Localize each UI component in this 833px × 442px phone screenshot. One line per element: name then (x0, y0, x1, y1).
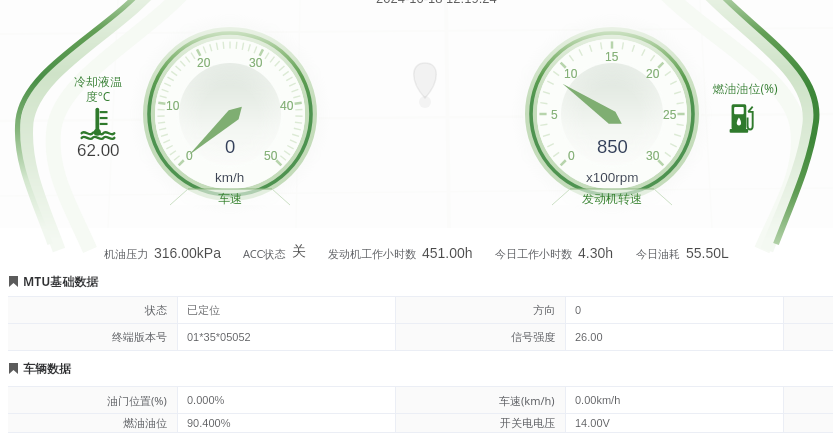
staticText: 机油压力 (104, 247, 148, 261)
button[interactable]: 状态 (8, 297, 177, 323)
staticText: 0 (575, 304, 582, 316)
button[interactable]: 0.00km/h (566, 387, 783, 413)
staticText: 25 (663, 108, 677, 121)
button[interactable]: 14.00V (566, 414, 783, 432)
staticText: 冷却液温 度°C (74, 74, 122, 104)
button[interactable]: MTU基础数据 (9, 273, 99, 289)
staticText: 已定位 (187, 303, 220, 317)
button[interactable]: ACC状态 (243, 243, 306, 261)
staticText: 发动机工作小时数 (328, 247, 416, 261)
button[interactable]: 开关电电压 (396, 414, 565, 432)
staticText: 20 (646, 67, 660, 80)
other: Coolant temperature (81, 107, 115, 139)
staticText: 55.50L (686, 245, 729, 261)
button[interactable]: 油门位置(%) (8, 387, 177, 413)
staticText: 14.00V (575, 417, 610, 429)
staticText: 30 (249, 56, 263, 69)
staticText: 燃油油位(%) (712, 80, 778, 96)
button[interactable]: 0.000% (178, 387, 395, 413)
button[interactable]: 机油压力 (104, 245, 221, 261)
button[interactable]: 发动机工作小时数 (328, 245, 473, 261)
button[interactable]: 01*35*05052 (178, 324, 395, 350)
staticText: 车速(km/h) (499, 393, 555, 408)
staticText: ACC状态 (243, 246, 286, 261)
staticText: 40 (280, 99, 294, 112)
staticText: 01*35*05052 (187, 331, 251, 343)
button[interactable]: 今日工作小时数 (495, 245, 614, 261)
staticText: 50 (264, 149, 278, 162)
staticText: 15 (605, 50, 619, 63)
button[interactable]: 燃油油位(%) (705, 80, 785, 134)
staticText: 车速 (218, 191, 242, 206)
button[interactable]: 已定位 (178, 297, 395, 323)
staticText: 10 (564, 67, 578, 80)
staticText: 4.30h (578, 245, 614, 261)
staticText: 5 (551, 108, 558, 121)
staticText: 车辆数据 (23, 361, 71, 376)
staticText: 油门位置(%) (107, 393, 167, 408)
staticText: 0.00km/h (575, 394, 621, 406)
button[interactable]: 今日油耗 (636, 245, 729, 261)
staticText: 10 (166, 99, 180, 112)
staticText: 关 (292, 243, 306, 261)
staticText: MTU基础数据 (23, 273, 99, 289)
button[interactable]: 0 (566, 297, 783, 323)
staticText: km/h (215, 170, 245, 185)
staticText: 燃油油位 (123, 416, 167, 430)
button[interactable]: 信号强度 (396, 324, 565, 350)
button[interactable]: 90.400% (178, 414, 395, 432)
staticText: 信号强度 (511, 330, 555, 344)
staticText: 开关电电压 (500, 416, 555, 430)
staticText: 方向 (533, 303, 555, 317)
button[interactable]: 车速(km/h) (396, 387, 565, 413)
staticText: 今日油耗 (636, 247, 680, 261)
staticText: 今日工作小时数 (495, 247, 572, 261)
button[interactable]: 车辆数据 (9, 361, 71, 376)
staticText: 发动机转速 (582, 191, 642, 206)
button[interactable]: 车速 (168, 188, 292, 208)
staticText: 850 (597, 136, 628, 157)
staticText: 90.400% (187, 417, 231, 429)
button[interactable]: 方向 (396, 297, 565, 323)
staticText: 20 (197, 56, 211, 69)
staticText: 终端版本号 (112, 330, 167, 344)
button[interactable]: 26.00 (566, 324, 783, 350)
staticText: 62.00 (77, 141, 120, 160)
button[interactable]: 发动机转速 (550, 188, 674, 208)
staticText: 451.00h (422, 245, 473, 261)
staticText: 26.00 (575, 331, 603, 343)
staticText: 0.000% (187, 394, 225, 406)
staticText: 2024-10-18 12:19:24 (376, 0, 497, 6)
staticText: 0 (568, 149, 575, 162)
button[interactable]: 燃油油位 (8, 414, 177, 432)
staticText: 0 (225, 136, 236, 157)
button[interactable]: 终端版本号 (8, 324, 177, 350)
button[interactable]: 冷却液温 度°C (58, 74, 138, 160)
staticText: 状态 (145, 303, 167, 317)
staticText: x100rpm (586, 170, 639, 185)
staticText: 30 (646, 149, 660, 162)
other: Fuel level (729, 101, 761, 134)
staticText: 316.00kPa (154, 245, 221, 261)
staticText: 0 (186, 149, 193, 162)
